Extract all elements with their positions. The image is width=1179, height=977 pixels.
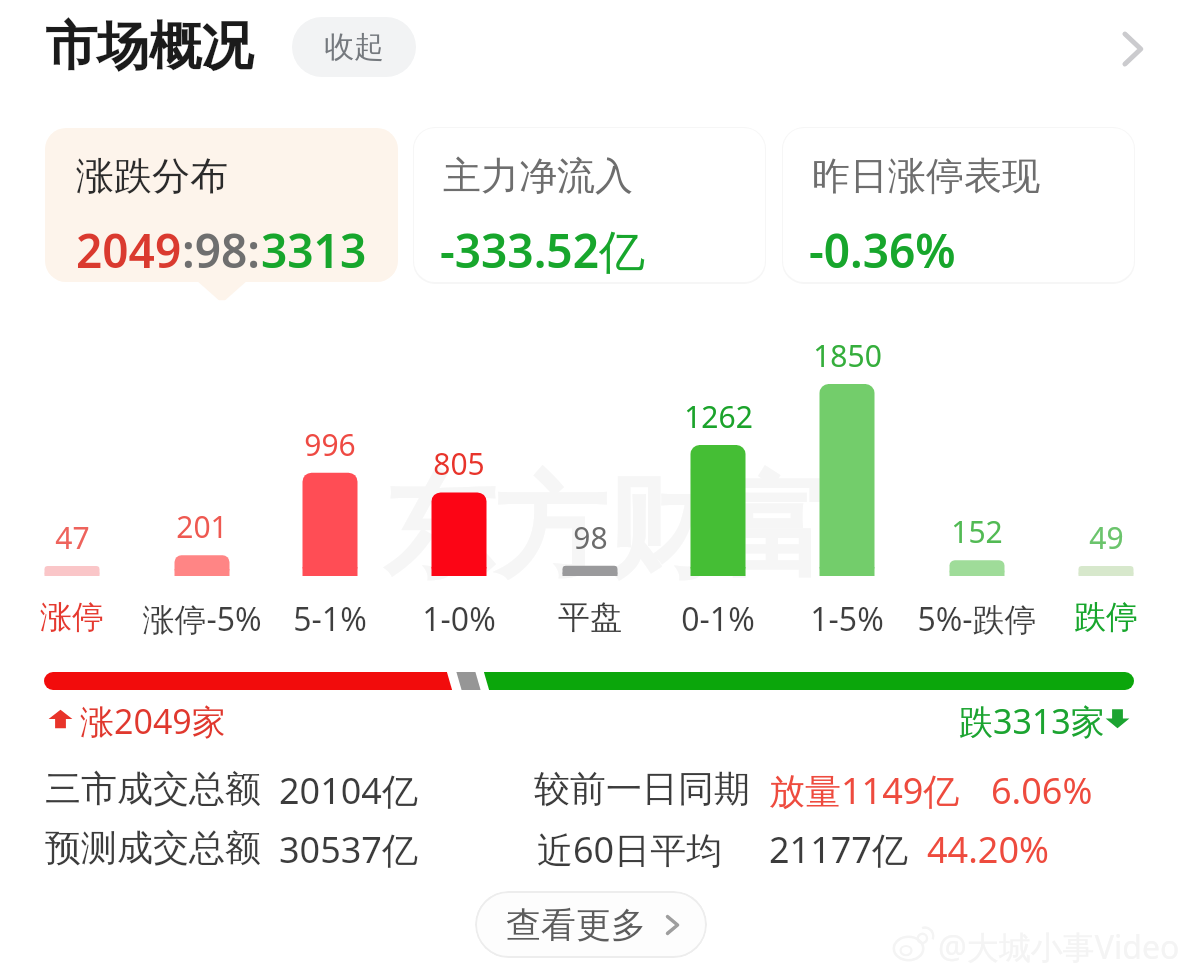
staticText: 805 bbox=[433, 443, 485, 484]
staticText: 跌停 bbox=[1074, 597, 1138, 637]
button[interactable]: 查看更多 bbox=[475, 891, 707, 958]
staticText: 2049 bbox=[76, 219, 182, 282]
staticText: :98: bbox=[182, 219, 261, 282]
staticText: 6.06% bbox=[991, 766, 1093, 815]
button[interactable]: 主力净流入 bbox=[414, 128, 765, 282]
button[interactable]: Expand market overview bbox=[1102, 19, 1162, 79]
button[interactable]: 昨日涨停表现 bbox=[783, 128, 1134, 282]
staticText: 涨跌分布 bbox=[76, 152, 228, 200]
staticText: 152 bbox=[951, 511, 1003, 552]
button[interactable]: 涨跌分布 bbox=[45, 128, 398, 282]
staticText: 996 bbox=[304, 424, 356, 465]
staticText: 近60日平均 bbox=[537, 825, 723, 874]
staticText: 1850 bbox=[813, 335, 882, 376]
staticText: 主力净流入 bbox=[443, 152, 633, 200]
staticText: 较前一日同期 bbox=[534, 766, 750, 811]
staticText: 1-5% bbox=[810, 597, 884, 641]
staticText: 47 bbox=[55, 517, 90, 558]
staticText: 昨日涨停表现 bbox=[812, 152, 1040, 200]
staticText: @大城小事Video bbox=[938, 925, 1179, 969]
staticText: 跌3313家 bbox=[959, 698, 1105, 744]
staticText: 三市成交总额 bbox=[45, 766, 261, 811]
staticText: 涨停-5% bbox=[142, 597, 262, 641]
staticText: 预测成交总额 bbox=[45, 825, 261, 870]
staticText: 东方财富 bbox=[383, 458, 831, 599]
staticText: 查看更多 bbox=[506, 903, 646, 947]
staticText: -333.52亿 bbox=[440, 219, 645, 282]
staticText: 98 bbox=[573, 517, 608, 558]
staticText: 市场概况 bbox=[45, 14, 253, 80]
staticText: 49 bbox=[1089, 517, 1124, 558]
button[interactable]: 收起 bbox=[292, 17, 416, 77]
staticText: 5%-跌停 bbox=[917, 597, 1037, 641]
staticText: 30537亿 bbox=[279, 825, 418, 874]
staticText: 44.20% bbox=[927, 825, 1049, 874]
staticText: 收起 bbox=[324, 28, 384, 66]
staticText: 1-0% bbox=[422, 597, 496, 641]
staticText: 平盘 bbox=[558, 597, 622, 637]
staticText: 21177亿 bbox=[769, 825, 908, 874]
staticText: 放量1149亿 bbox=[769, 766, 960, 815]
staticText: 涨停 bbox=[40, 597, 104, 637]
staticText: -0.36% bbox=[809, 219, 956, 282]
staticText: 5-1% bbox=[293, 597, 367, 641]
staticText: 20104亿 bbox=[279, 766, 418, 815]
staticText: 1262 bbox=[684, 396, 753, 437]
staticText: 0-1% bbox=[681, 597, 755, 641]
staticText: 3313 bbox=[261, 219, 367, 282]
staticText: 涨2049家 bbox=[80, 698, 226, 744]
staticText: 201 bbox=[176, 506, 228, 547]
